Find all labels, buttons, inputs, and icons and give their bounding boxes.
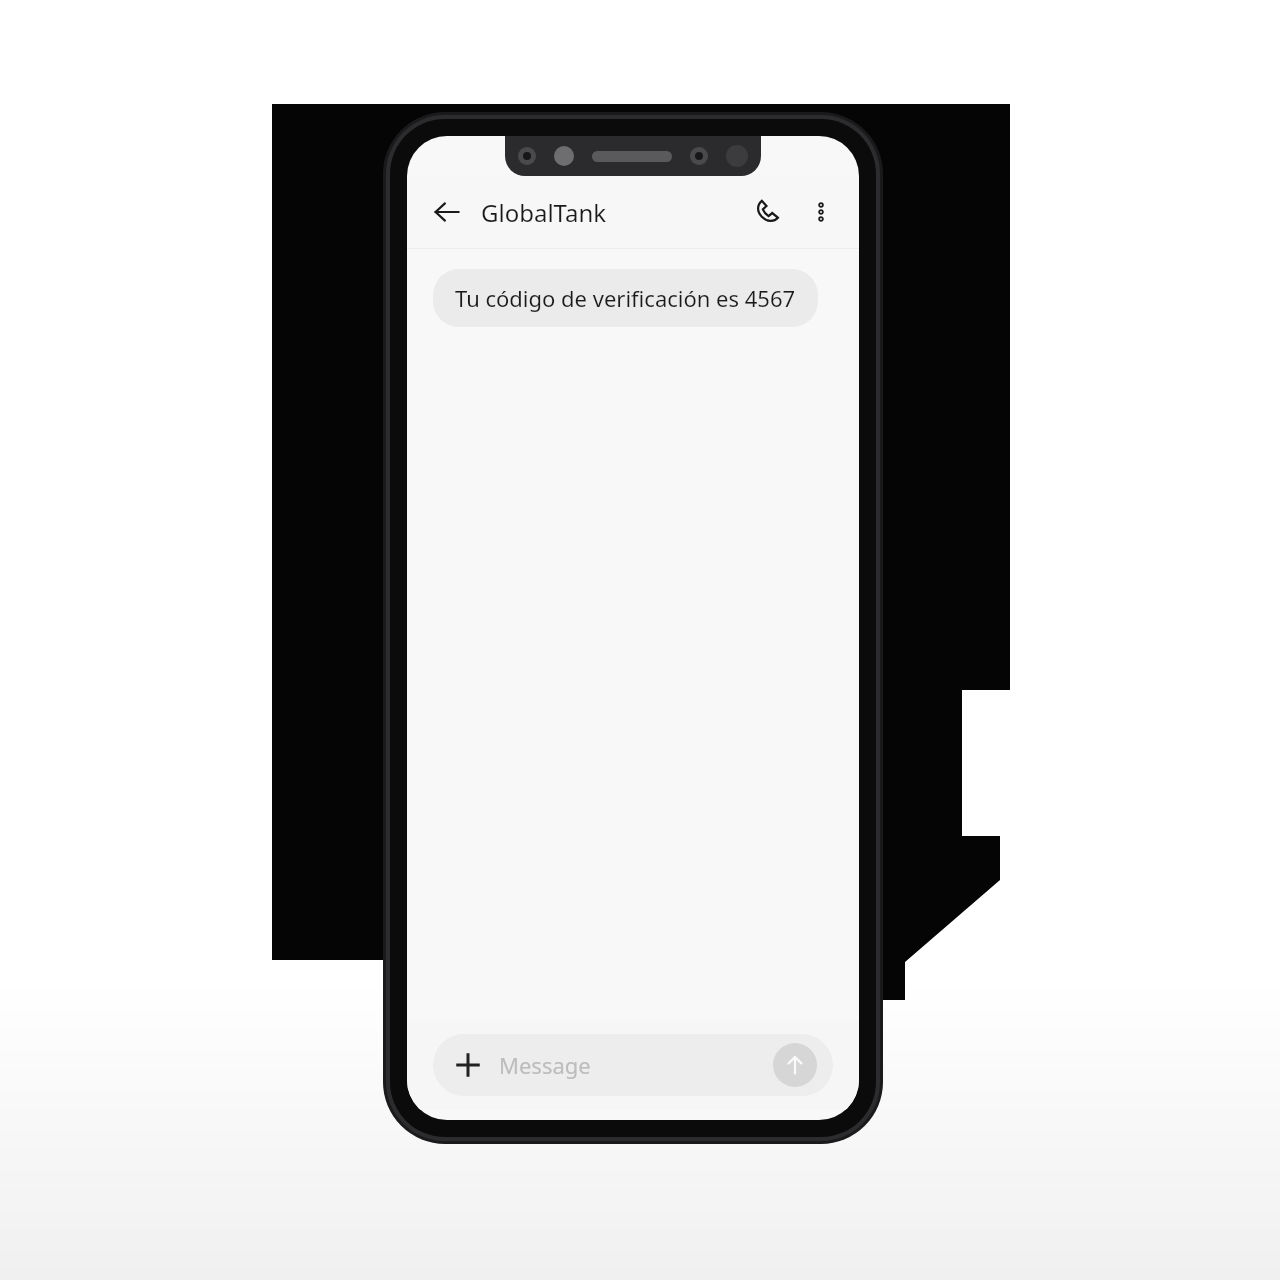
button[interactable]: More options [801,192,841,232]
button[interactable]: Call [745,190,789,234]
button[interactable]: Back [425,190,469,234]
button[interactable]: Send [773,1043,817,1087]
staticText: Message [499,1050,591,1080]
staticText: GlobalTank [481,196,607,229]
button[interactable]: Attach [449,1046,487,1084]
staticText: Tu código de verificación es 4567 [455,283,796,313]
button[interactable]: Attach [433,1034,833,1096]
button[interactable]: Tu código de verificación es 4567 [433,269,818,327]
